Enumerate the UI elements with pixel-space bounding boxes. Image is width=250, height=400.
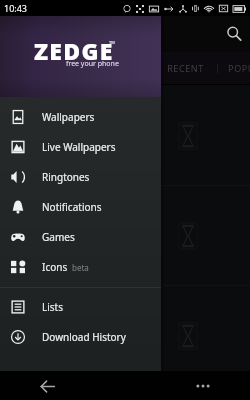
button[interactable]: Ringtones [0, 162, 161, 192]
staticText: TRENDING [95, 62, 146, 74]
button[interactable]: Lists [0, 292, 161, 322]
button[interactable]: TRENDING [88, 52, 152, 84]
button[interactable] [125, 286, 250, 385]
staticText: Ringtones [42, 170, 90, 184]
staticText: RECENT [167, 62, 204, 74]
staticText: Icons [42, 260, 68, 274]
button[interactable]: Live Wallpapers [0, 132, 161, 162]
staticText: free your phone [66, 59, 119, 69]
button[interactable] [0, 186, 125, 285]
staticText: Games [42, 230, 75, 244]
button[interactable]: Games [0, 222, 161, 252]
staticText: POPULAR [228, 62, 250, 74]
staticText: TM [109, 40, 115, 45]
staticText: ZEDGE [34, 35, 114, 66]
button[interactable]: Icons [0, 252, 161, 282]
button[interactable]: Back [34, 373, 60, 399]
button[interactable] [0, 86, 125, 185]
button[interactable]: More options [190, 373, 216, 399]
button[interactable]: Download History [0, 322, 161, 352]
staticText: Live Wallpapers [42, 140, 116, 154]
button[interactable]: Wallpapers [0, 102, 161, 132]
button[interactable]: RECENT [153, 52, 217, 84]
staticText: Wallpapers [42, 110, 95, 124]
staticText: Download History [42, 330, 126, 344]
staticText: beta [72, 262, 89, 273]
staticText: Notifications [42, 200, 102, 214]
button[interactable] [125, 186, 250, 285]
button[interactable]: POPULAR [218, 52, 250, 84]
staticText: Lists [42, 300, 64, 314]
staticText: 10:43 [4, 2, 28, 14]
button[interactable] [125, 86, 250, 185]
button[interactable]: Notifications [0, 192, 161, 222]
button[interactable] [0, 286, 125, 385]
button[interactable]: Search [220, 20, 248, 48]
